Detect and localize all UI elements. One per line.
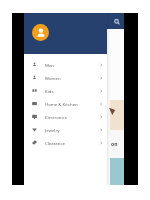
staticText: on [111,141,118,148]
button[interactable]: Women [24,71,107,84]
staticText: Women [45,75,61,81]
button[interactable]: Electronics [24,110,107,123]
staticText: Clearance [45,140,65,146]
staticText: Kids [45,88,54,94]
staticText: Men [45,62,54,68]
button[interactable]: Jewelry [24,123,107,136]
button[interactable]: Search [111,16,122,27]
button[interactable]: Kids [24,84,107,97]
button[interactable]: Men [24,58,107,71]
staticText: Jewelry [45,127,60,133]
button[interactable]: Home & Kitchen [24,97,107,110]
staticText: Home & Kitchen [45,101,78,107]
button[interactable]: Clearance [24,136,107,149]
staticText: Electronics [45,114,67,120]
